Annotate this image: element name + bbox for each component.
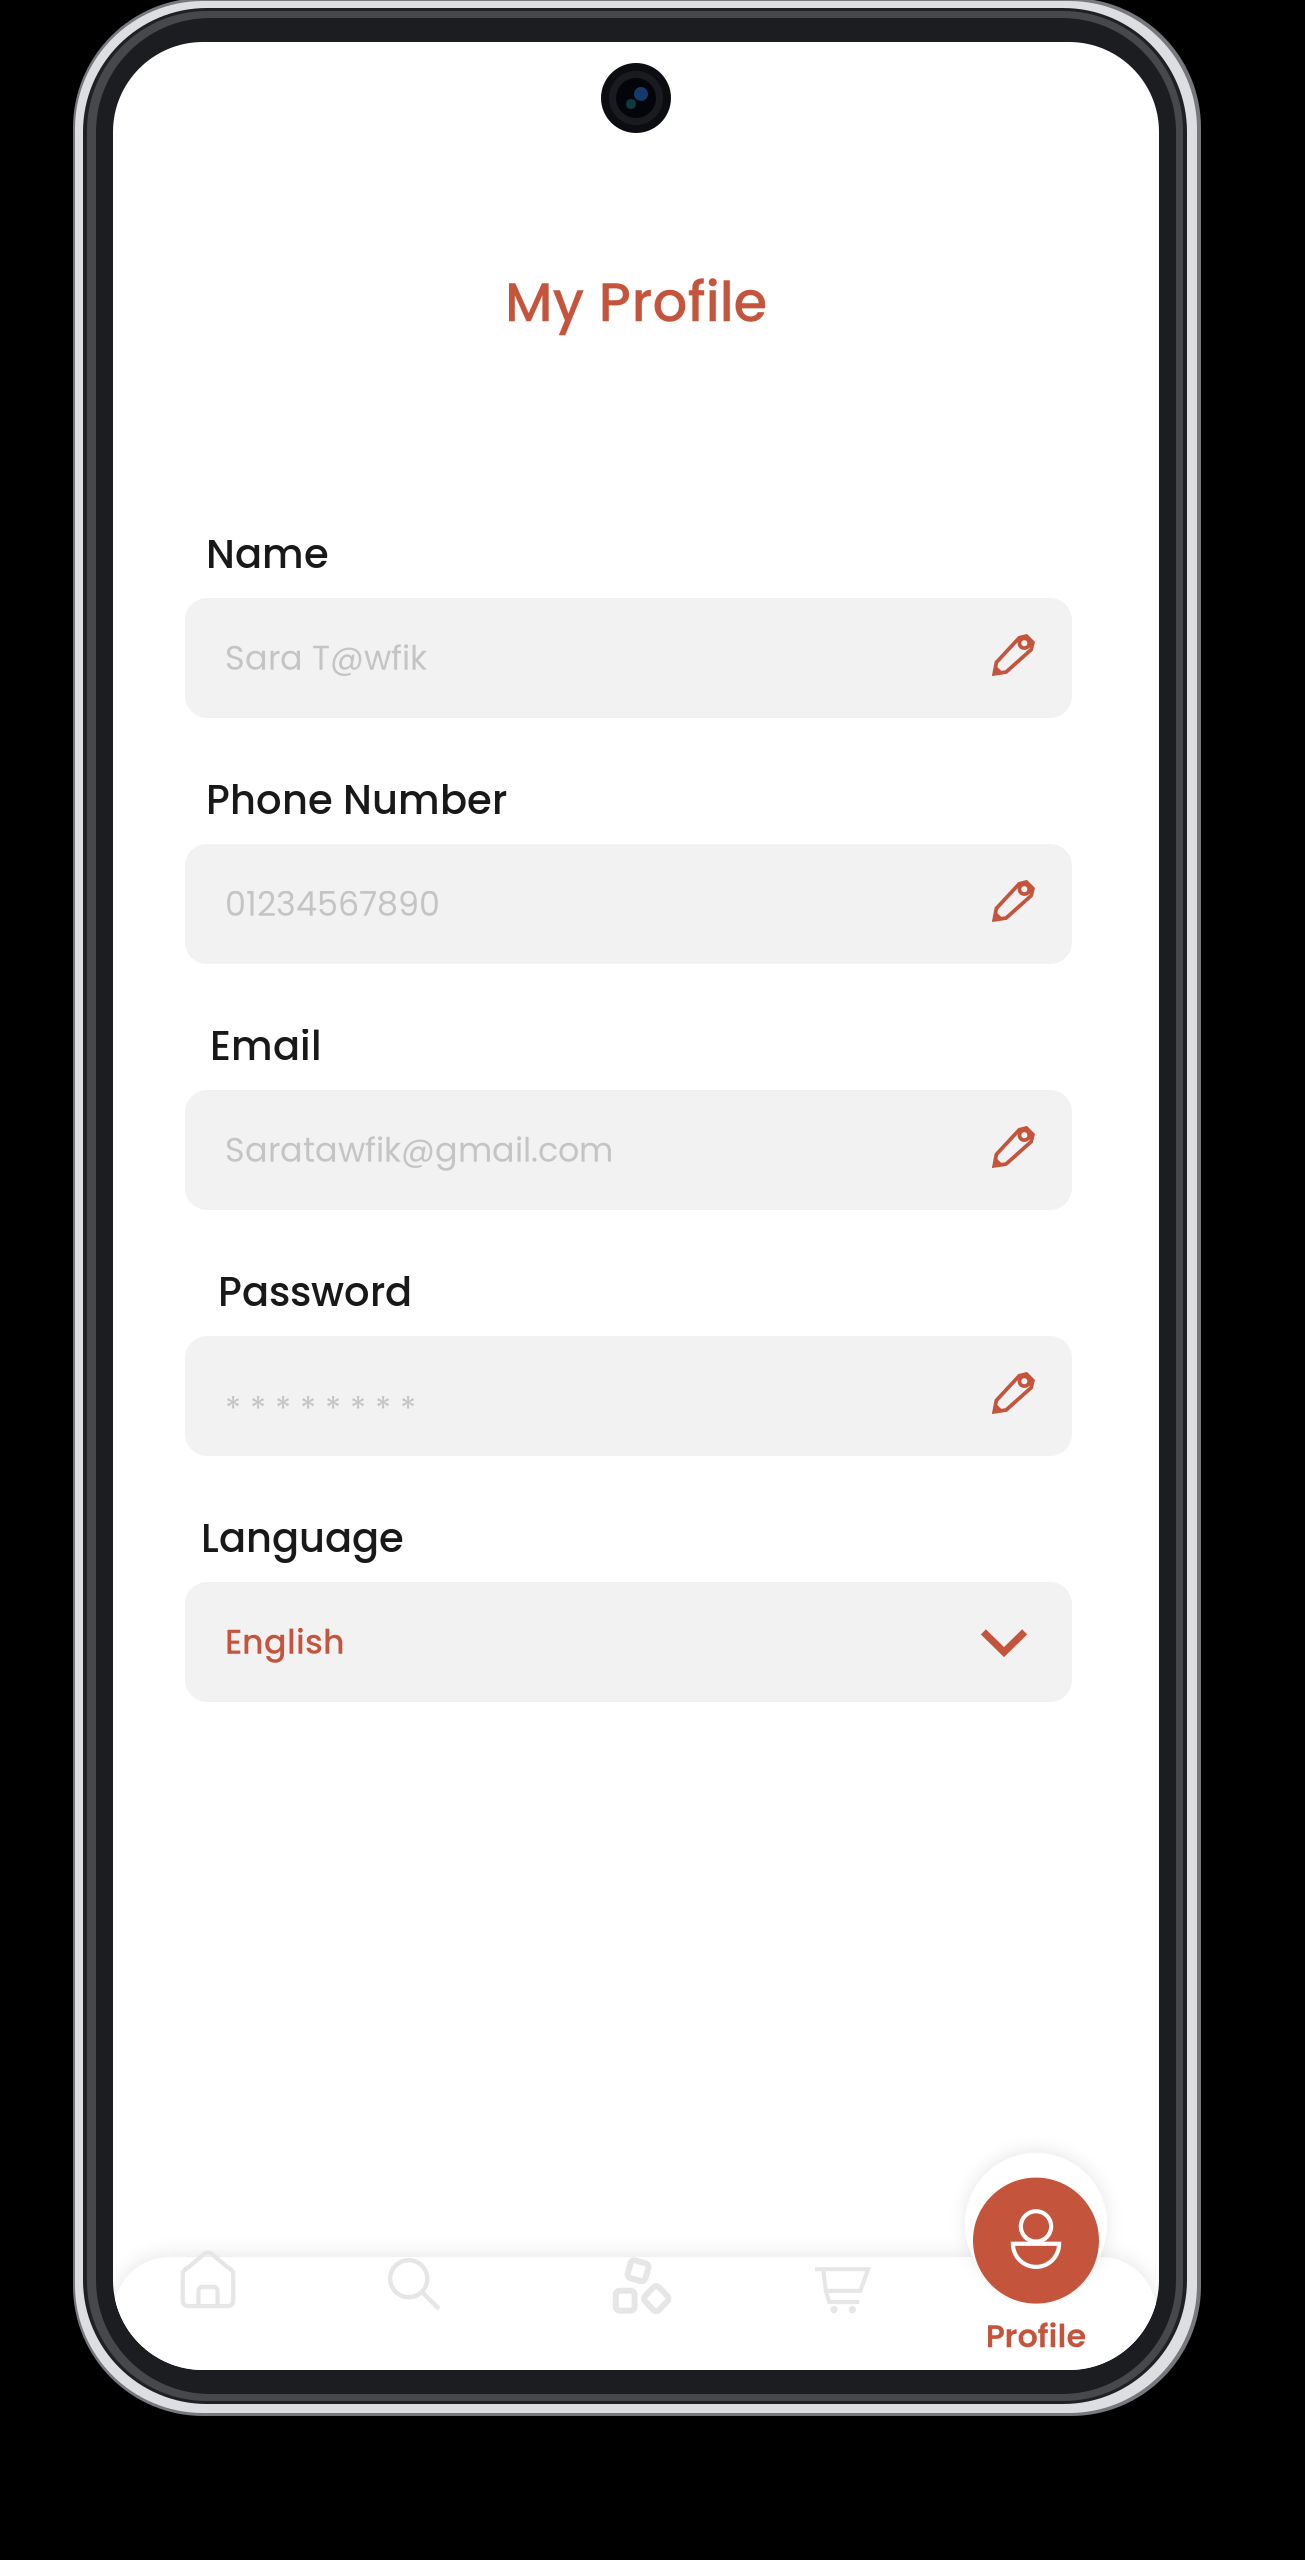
staticText: Saratawfik@gmail.com (225, 1127, 613, 1173)
staticText: Profile (985, 2314, 1086, 2358)
staticText: 01234567890 (225, 881, 440, 927)
staticText: Sara T@wfik (225, 635, 427, 681)
button[interactable]: Sara T@wfik (185, 598, 1072, 718)
button[interactable]: 01234567890 (185, 844, 1072, 964)
button[interactable]: English (185, 1582, 1072, 1702)
staticText: Language (201, 1510, 404, 1566)
button[interactable]: Cart (786, 2233, 896, 2343)
staticText: Email (210, 1018, 322, 1074)
staticText: Name (206, 526, 329, 582)
staticText: My Profile (504, 264, 767, 340)
staticText: English (225, 1619, 345, 1665)
button[interactable]: Profile (973, 2178, 1099, 2358)
button[interactable]: Saratawfik@gmail.com (185, 1090, 1072, 1210)
button[interactable]: Search (359, 2229, 469, 2339)
staticText: Password (218, 1264, 412, 1320)
button[interactable]: Home (153, 2225, 263, 2335)
button[interactable]: Categories (587, 2230, 697, 2340)
button[interactable]: * * * * * * * * (185, 1336, 1072, 1456)
staticText: * * * * * * * * (225, 1386, 416, 1432)
staticText: Phone Number (206, 772, 507, 828)
